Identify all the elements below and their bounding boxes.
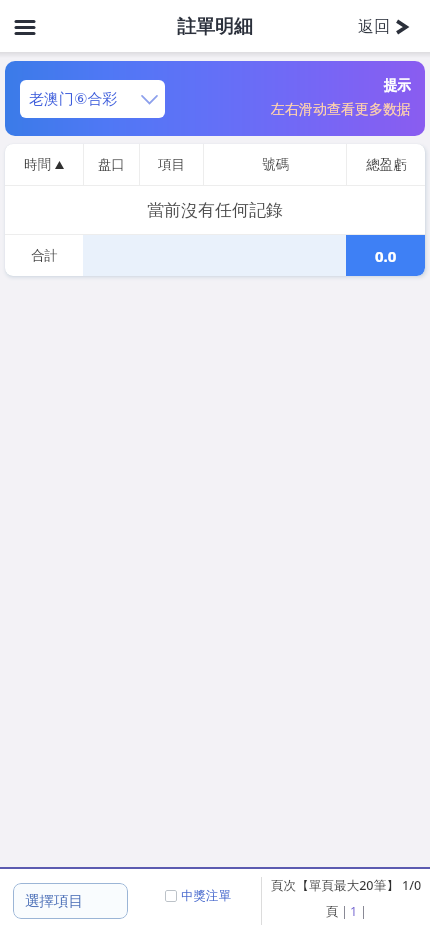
button[interactable]: Open navigation menu bbox=[5, 7, 45, 47]
staticText: 註單明細 bbox=[177, 15, 253, 39]
staticText: | bbox=[360, 903, 367, 920]
staticText: 項目 bbox=[158, 156, 185, 173]
button[interactable]: 老澳门⑥合彩 bbox=[20, 80, 165, 118]
staticText: 總盈虧 bbox=[366, 156, 407, 173]
staticText: 頁 bbox=[326, 904, 339, 920]
staticText: 0.0 bbox=[375, 246, 397, 266]
button[interactable]: 返回 bbox=[358, 17, 407, 37]
staticText: 合計 bbox=[31, 247, 58, 264]
staticText: 老澳门⑥合彩 bbox=[29, 90, 118, 109]
staticText: 左右滑动查看更多数据 bbox=[271, 101, 411, 119]
staticText: 盘口 bbox=[98, 156, 125, 173]
staticText: 當前沒有任何記錄 bbox=[147, 200, 283, 221]
staticText: 時間 bbox=[24, 156, 51, 173]
button[interactable]: 盘口 bbox=[84, 144, 139, 185]
staticText: 提示 bbox=[384, 77, 411, 94]
button[interactable]: 中獎注單 bbox=[165, 888, 231, 904]
staticText: 選擇項目 bbox=[25, 892, 83, 910]
button[interactable]: 1 bbox=[350, 903, 358, 920]
button[interactable]: 總盈虧 bbox=[347, 144, 425, 185]
staticText: 號碼 bbox=[262, 156, 289, 173]
button[interactable]: 號碼 bbox=[204, 144, 346, 185]
staticText: 中獎注單 bbox=[181, 888, 231, 904]
button[interactable]: 選擇項目 bbox=[13, 883, 128, 919]
staticText: 頁次【單頁最大20筆】 1/0 bbox=[271, 877, 422, 894]
staticText: | bbox=[341, 903, 348, 920]
button[interactable]: 時間 bbox=[5, 144, 83, 185]
button[interactable]: 項目 bbox=[140, 144, 203, 185]
staticText: 返回 bbox=[358, 17, 390, 37]
